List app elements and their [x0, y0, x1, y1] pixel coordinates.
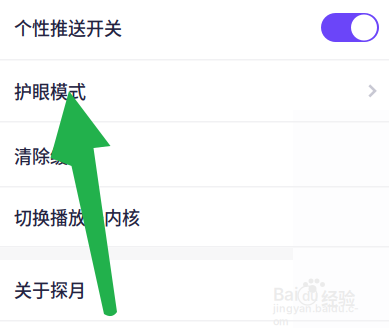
- button[interactable]: 关于探月: [0, 259, 389, 320]
- button[interactable]: 护眼模式: [0, 60, 389, 122]
- staticText: du: [302, 288, 318, 304]
- staticText: 护眼模式: [14, 78, 86, 104]
- button[interactable]: 个性推送开关: [321, 13, 379, 42]
- staticText: Bai: [273, 284, 299, 305]
- staticText: 经验: [321, 285, 355, 310]
- staticText: 清除缓存: [14, 142, 86, 169]
- staticText: jingyan.baidu.com: [273, 302, 359, 328]
- button[interactable]: 切换播放器内核: [0, 187, 389, 247]
- button[interactable]: 清除缓存: [0, 124, 389, 187]
- staticText: 个性推送开关: [14, 14, 122, 41]
- button[interactable]: 个性推送开关: [0, 0, 389, 59]
- staticText: 关于探月: [14, 276, 86, 303]
- staticText: 切换播放器内核: [14, 204, 140, 230]
